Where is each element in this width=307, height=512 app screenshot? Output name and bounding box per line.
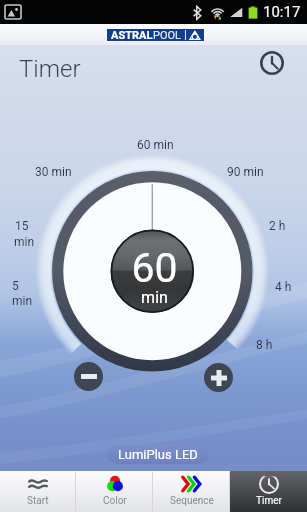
staticText: 15 [15, 219, 29, 233]
staticText: POOL [153, 29, 181, 41]
staticText: Color [103, 495, 127, 507]
staticText: 8 h [256, 338, 273, 352]
button[interactable]: LumiPlus LED [107, 445, 209, 464]
staticText: min [12, 294, 33, 308]
staticText: 90 min [227, 165, 264, 179]
staticText: 2 h [269, 219, 286, 233]
staticText: 4 h [275, 280, 292, 294]
staticText: Start [27, 495, 49, 507]
staticText: 10:17 [263, 3, 301, 21]
button[interactable]: Clock [256, 47, 288, 79]
staticText: 60 min [137, 138, 174, 152]
button[interactable]: Sequence [153, 471, 230, 512]
staticText: ASTRAL [111, 29, 153, 41]
staticText: 60 [104, 244, 205, 292]
staticText: LumiPlus LED [118, 447, 198, 462]
staticText: Sequence [170, 495, 214, 507]
staticText: min [14, 235, 35, 249]
button[interactable]: Increase [204, 363, 233, 392]
staticText: 5 [12, 279, 19, 293]
button[interactable]: Decrease [74, 362, 103, 391]
staticText: Timer [19, 55, 81, 83]
button[interactable]: Timer [230, 471, 307, 512]
staticText: min [104, 288, 205, 307]
button[interactable]: Color [76, 471, 153, 512]
staticText: Timer [256, 495, 282, 507]
staticText: 30 min [35, 165, 72, 179]
button[interactable]: Start [0, 471, 76, 512]
